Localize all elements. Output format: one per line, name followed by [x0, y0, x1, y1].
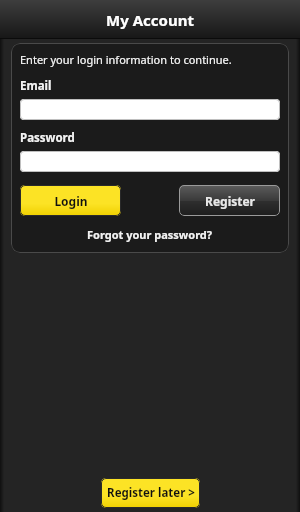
staticText: Register: [205, 193, 255, 209]
button[interactable]: [20, 151, 280, 172]
staticText: Login: [54, 193, 88, 209]
staticText: Email: [20, 78, 52, 94]
button[interactable]: Forgot your password?: [20, 225, 280, 244]
staticText: Register later >: [107, 485, 195, 501]
staticText: My Account: [106, 10, 194, 30]
button[interactable]: Login: [20, 185, 121, 216]
button[interactable]: Register: [179, 185, 280, 216]
staticText: Forgot your password?: [87, 227, 213, 242]
staticText: Password: [20, 130, 75, 146]
button[interactable]: Register later >: [101, 478, 200, 508]
button[interactable]: [20, 99, 280, 120]
staticText: Enter your login information to continue…: [20, 52, 232, 67]
